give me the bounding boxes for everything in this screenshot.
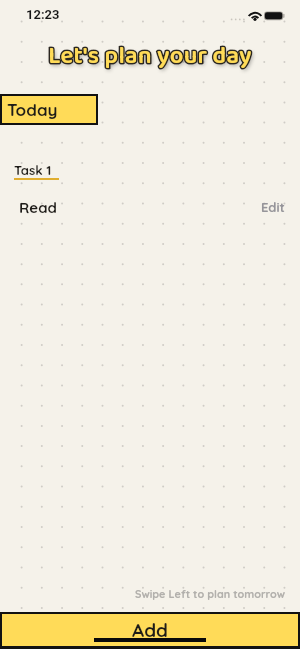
staticText: Today [7,99,58,120]
staticText: Add [132,618,169,642]
staticText: 12:23 [26,7,60,22]
button[interactable]: Read [0,194,300,220]
staticText: Let's plan your day [0,37,300,75]
staticText: Let's plan your day [0,37,300,75]
staticText: Swipe Left to plan tomorrow [135,587,286,601]
button[interactable]: Today [2,96,96,123]
staticText: Task 1 [14,162,52,178]
button[interactable]: Add [2,614,298,646]
other: Status icons [228,8,286,22]
staticText: Read [19,198,57,217]
staticText: Edit [261,199,285,215]
